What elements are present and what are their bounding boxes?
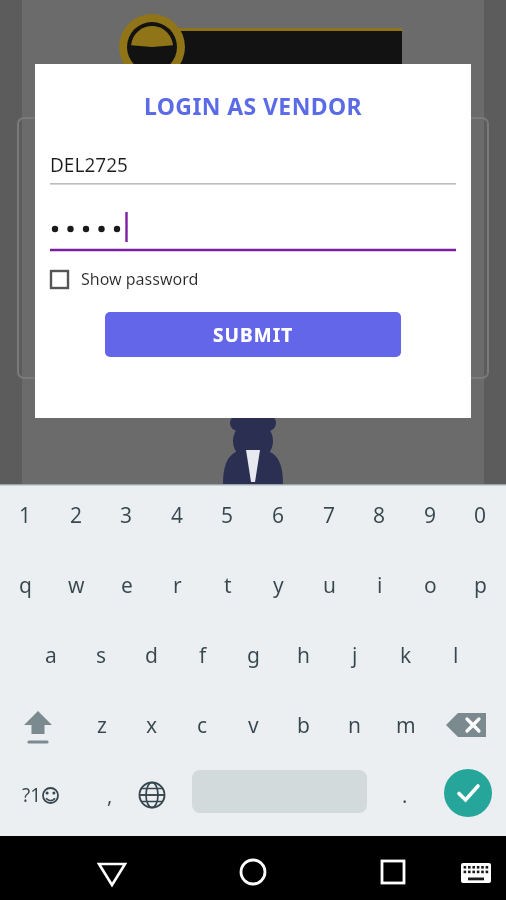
- staticText: SUBMIT: [213, 322, 294, 348]
- button[interactable]: x: [126, 701, 177, 749]
- staticText: u: [323, 571, 336, 600]
- staticText: s: [96, 641, 107, 670]
- button[interactable]: .: [385, 771, 425, 819]
- staticText: e: [121, 571, 133, 600]
- staticText: 9: [424, 501, 437, 530]
- staticText: p: [474, 571, 487, 600]
- button[interactable]: Hide keyboard: [455, 852, 497, 894]
- staticText: n: [348, 711, 361, 740]
- button[interactable]: SUBMIT: [105, 312, 401, 357]
- staticText: j: [352, 641, 358, 670]
- button[interactable]: Enter: [444, 769, 492, 817]
- staticText: 3: [120, 501, 133, 530]
- button[interactable]: i: [354, 561, 405, 609]
- button[interactable]: h: [278, 631, 329, 679]
- staticText: 1: [19, 501, 32, 530]
- button[interactable]: s: [76, 631, 127, 679]
- button[interactable]: q: [0, 561, 51, 609]
- button[interactable]: DEL2725: [50, 146, 456, 184]
- staticText: d: [145, 641, 158, 670]
- button[interactable]: 5: [202, 491, 253, 539]
- button[interactable]: Recent apps: [369, 848, 417, 896]
- staticText: a: [45, 641, 57, 670]
- staticText: m: [396, 711, 416, 740]
- button[interactable]: j: [329, 631, 380, 679]
- button[interactable]: 8: [354, 491, 405, 539]
- button[interactable]: u: [304, 561, 355, 609]
- button[interactable]: c: [177, 701, 228, 749]
- button[interactable]: 7: [304, 491, 355, 539]
- staticText: ?1: [22, 782, 42, 808]
- button[interactable]: Password: [50, 211, 456, 251]
- staticText: f: [199, 641, 207, 670]
- staticText: 0: [474, 501, 487, 530]
- button[interactable]: p: [455, 561, 506, 609]
- button[interactable]: Home: [229, 848, 277, 896]
- staticText: r: [173, 571, 182, 600]
- staticText: LOGIN AS VENDOR: [35, 90, 471, 121]
- staticText: l: [453, 641, 459, 670]
- staticText: DEL2725: [50, 152, 128, 178]
- staticText: t: [224, 571, 232, 600]
- button[interactable]: e: [101, 561, 152, 609]
- staticText: 7: [323, 501, 336, 530]
- staticText: 4: [171, 501, 184, 530]
- button[interactable]: r: [152, 561, 203, 609]
- staticText: x: [146, 711, 158, 740]
- button[interactable]: z: [76, 701, 127, 749]
- button[interactable]: a: [25, 631, 76, 679]
- staticText: z: [97, 711, 107, 740]
- button[interactable]: w: [51, 561, 102, 609]
- button[interactable]: 4: [152, 491, 203, 539]
- button[interactable]: 6: [253, 491, 304, 539]
- staticText: 6: [272, 501, 285, 530]
- staticText: 5: [221, 501, 234, 530]
- button[interactable]: b: [278, 701, 329, 749]
- staticText: q: [19, 571, 32, 600]
- button[interactable]: v: [228, 701, 279, 749]
- button[interactable]: 1: [0, 491, 51, 539]
- staticText: w: [68, 571, 85, 600]
- staticText: h: [297, 641, 310, 670]
- staticText: g: [247, 641, 260, 670]
- button[interactable]: d: [126, 631, 177, 679]
- staticText: 2: [70, 501, 83, 530]
- button[interactable]: y: [253, 561, 304, 609]
- staticText: c: [197, 711, 208, 740]
- button[interactable]: Symbols and emoji: [8, 771, 72, 819]
- button[interactable]: 9: [405, 491, 456, 539]
- staticText: .: [402, 782, 408, 809]
- button[interactable]: Back: [88, 848, 136, 896]
- button[interactable]: Backspace: [444, 703, 492, 751]
- button[interactable]: l: [430, 631, 481, 679]
- staticText: Show password: [81, 268, 199, 290]
- button[interactable]: o: [405, 561, 456, 609]
- button[interactable]: 0: [455, 491, 506, 539]
- button[interactable]: g: [228, 631, 279, 679]
- button[interactable]: Change keyboard language: [128, 771, 176, 819]
- button[interactable]: ,: [88, 771, 132, 819]
- button[interactable]: m: [380, 701, 431, 749]
- staticText: y: [273, 571, 284, 600]
- button[interactable]: 2: [51, 491, 102, 539]
- button[interactable]: Shift: [14, 703, 62, 751]
- button[interactable]: Show password: [50, 263, 199, 295]
- button[interactable]: n: [329, 701, 380, 749]
- button[interactable]: k: [380, 631, 431, 679]
- staticText: ,: [107, 782, 113, 809]
- button[interactable]: t: [202, 561, 253, 609]
- staticText: k: [400, 641, 412, 670]
- staticText: o: [424, 571, 437, 600]
- staticText: 8: [373, 501, 386, 530]
- button[interactable]: f: [177, 631, 228, 679]
- button[interactable]: 3: [101, 491, 152, 539]
- staticText: i: [377, 571, 383, 600]
- staticText: b: [297, 711, 310, 740]
- staticText: v: [248, 711, 259, 740]
